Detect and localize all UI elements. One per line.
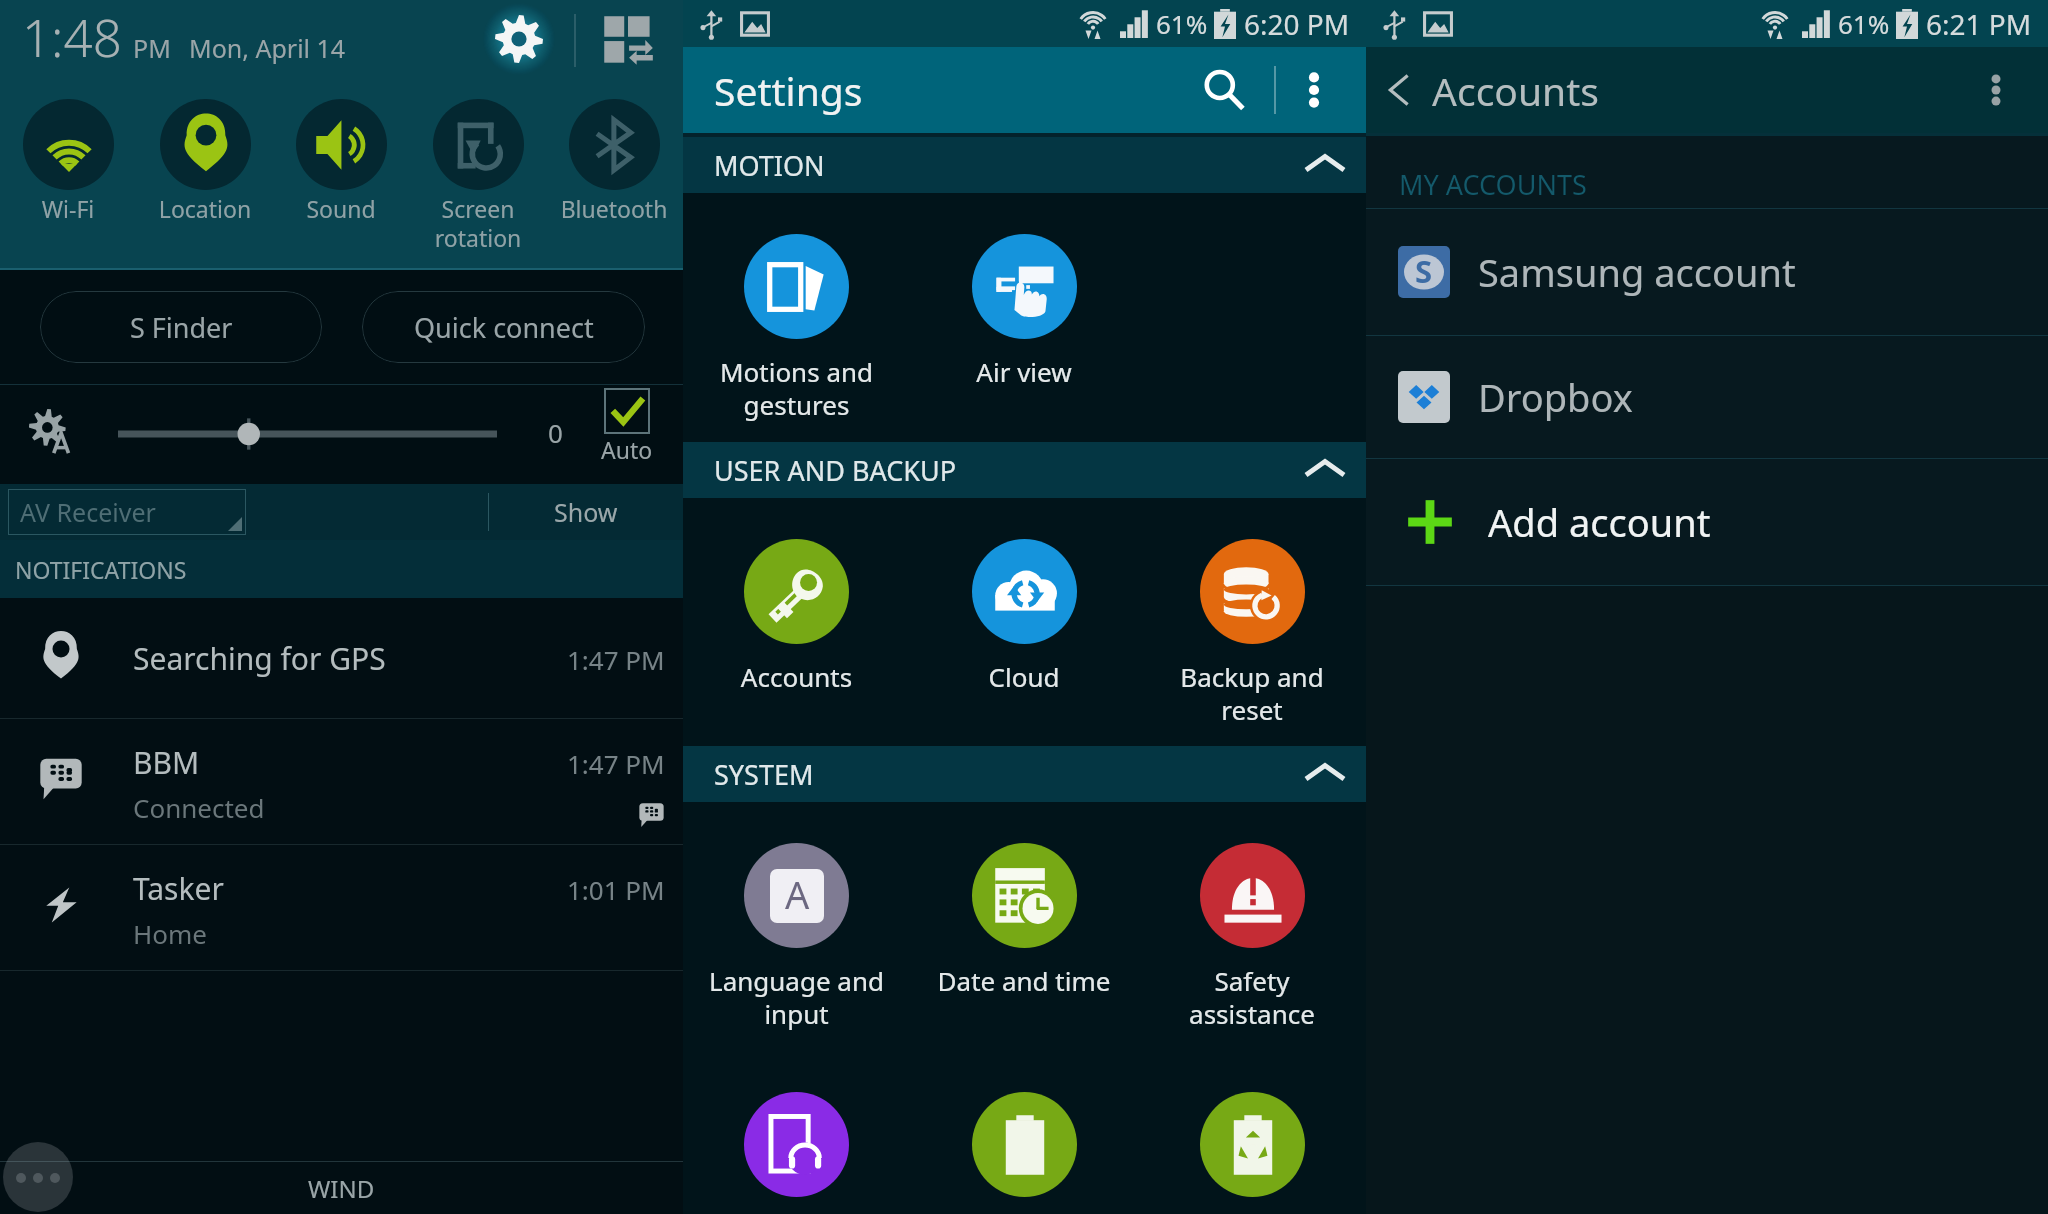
button[interactable]: Recent apps <box>3 1142 73 1212</box>
staticText: NOTIFICATIONS <box>15 554 187 585</box>
staticText: 61% <box>1156 6 1208 41</box>
button[interactable]: Bluetooth <box>546 99 682 224</box>
staticText: Searching for GPS <box>133 638 386 679</box>
staticText: Safety assistance <box>1138 963 1366 1032</box>
button[interactable]: SYSTEM <box>683 746 1366 802</box>
button[interactable]: A <box>683 802 910 1051</box>
staticText: Show <box>554 495 618 529</box>
staticText: Quick connect <box>414 309 594 346</box>
staticText: Connected <box>133 790 265 825</box>
staticText: BBM <box>133 742 200 783</box>
button[interactable]: Wi-Fi <box>0 99 136 224</box>
staticText: Accounts <box>1432 64 1599 117</box>
button[interactable]: Edit quick settings <box>600 12 656 68</box>
staticText: USER AND BACKUP <box>714 452 957 489</box>
staticText: Dropbox <box>1478 371 1633 423</box>
staticText: S Finder <box>130 309 233 346</box>
staticText: Auto <box>601 434 653 465</box>
staticText: WIND <box>308 1172 375 1205</box>
staticText: PM <box>133 31 171 65</box>
button[interactable]: Quick connect <box>362 291 645 363</box>
staticText: Location <box>137 193 273 224</box>
button[interactable]: Air view <box>910 193 1138 442</box>
button[interactable]: Add account <box>1366 459 2048 585</box>
button[interactable]: S Finder <box>40 291 322 363</box>
staticText: 1:01 PM <box>567 872 665 907</box>
staticText: A <box>785 869 810 920</box>
button[interactable]: Date and time <box>910 802 1138 1051</box>
staticText: 1:48 <box>22 2 122 71</box>
button[interactable]: Back <box>1366 47 1432 133</box>
button[interactable]: Screen rotation <box>410 99 546 254</box>
button[interactable]: Auto brightness <box>604 388 650 434</box>
button[interactable]: MOTION <box>683 137 1366 193</box>
button[interactable]: Accounts <box>683 498 910 746</box>
button[interactable] <box>910 1051 1138 1214</box>
button[interactable]: S <box>1366 209 2048 335</box>
button[interactable] <box>683 1051 910 1214</box>
button[interactable]: Searching for GPS <box>0 598 683 718</box>
staticText: 1:47 PM <box>567 642 665 677</box>
staticText: Screen rotation <box>410 193 546 254</box>
staticText: 6:20 PM <box>1244 5 1350 43</box>
staticText: Motions and gestures <box>683 354 910 423</box>
staticText: MY ACCOUNTS <box>1399 166 1587 203</box>
staticText: 0 <box>548 415 563 450</box>
staticText: Date and time <box>910 963 1138 998</box>
button[interactable]: Safety assistance <box>1138 802 1366 1051</box>
staticText: Language and input <box>683 963 910 1032</box>
button[interactable]: Backup and reset <box>1138 498 1366 746</box>
staticText: MOTION <box>714 147 825 184</box>
staticText: 1:47 PM <box>567 746 665 781</box>
button[interactable]: Settings <box>479 0 559 79</box>
staticText: Tasker <box>133 868 224 909</box>
staticText: Air view <box>910 354 1138 389</box>
staticText: Add account <box>1488 496 1711 548</box>
staticText: Home <box>133 916 207 951</box>
button[interactable]: Dropbox <box>1366 336 2048 458</box>
staticText: Wi-Fi <box>0 193 136 224</box>
staticText: Accounts <box>683 659 910 694</box>
button[interactable]: USER AND BACKUP <box>683 442 1366 498</box>
button[interactable]: Location <box>137 99 273 224</box>
staticText: Settings <box>714 64 863 117</box>
button[interactable]: AV Receiver <box>8 489 246 535</box>
button[interactable]: Motions and gestures <box>683 193 910 442</box>
button[interactable]: More options <box>1276 52 1352 128</box>
staticText: 61% <box>1838 6 1890 41</box>
button[interactable]: BBM <box>0 719 683 844</box>
staticText: Samsung account <box>1478 246 1796 298</box>
button[interactable]: Cloud <box>910 498 1138 746</box>
staticText: Sound <box>273 193 409 224</box>
staticText: Cloud <box>910 659 1138 694</box>
staticText: Backup and reset <box>1138 659 1366 728</box>
button[interactable]: Sound <box>273 99 409 224</box>
staticText: Bluetooth <box>546 193 682 224</box>
button[interactable] <box>1138 1051 1366 1214</box>
staticText: Mon, April 14 <box>189 31 346 65</box>
staticText: S <box>1415 250 1433 292</box>
button[interactable]: Search <box>1186 52 1262 128</box>
button[interactable]: More options <box>1958 52 2034 128</box>
staticText: SYSTEM <box>714 756 814 793</box>
button[interactable]: Show <box>489 484 683 540</box>
staticText: AV Receiver <box>20 495 156 529</box>
button[interactable]: Tasker <box>0 845 683 970</box>
staticText: 6:21 PM <box>1926 5 2032 43</box>
